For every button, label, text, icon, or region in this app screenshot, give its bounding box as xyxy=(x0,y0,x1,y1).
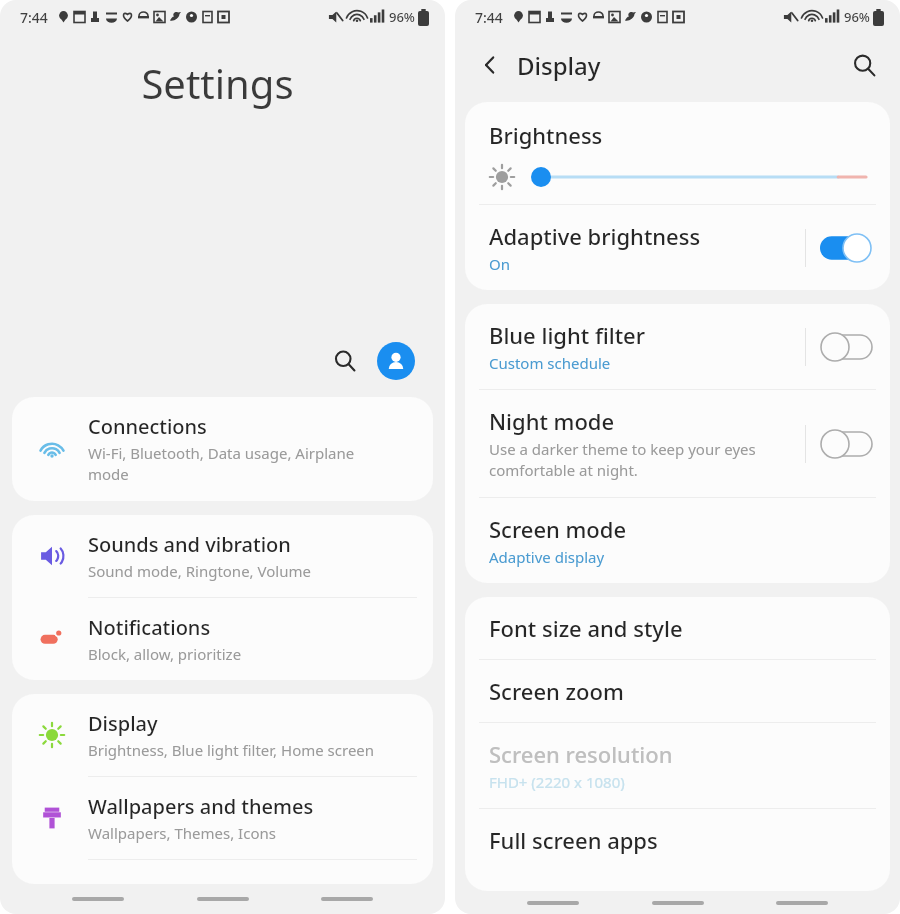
staticText: Use a darker theme to keep your eyes com… xyxy=(489,439,756,481)
button[interactable]: Screen resolution xyxy=(465,723,890,808)
button[interactable]: Wallpapers and themes xyxy=(12,777,433,859)
staticText: Wallpapers and themes xyxy=(88,793,314,820)
staticText: Notifications xyxy=(88,614,211,641)
staticText: Wi-Fi, Bluetooth, Data usage, Airplane m… xyxy=(88,443,355,485)
button[interactable]: Off xyxy=(820,429,872,459)
staticText: Brightness, Blue light filter, Home scre… xyxy=(88,740,375,760)
staticText: Block, allow, prioritize xyxy=(88,644,242,664)
staticText: Blue light filter xyxy=(489,320,646,350)
button[interactable]: Full screen apps xyxy=(465,809,890,871)
button[interactable]: Samsung account xyxy=(377,342,415,380)
staticText: Sounds and vibration xyxy=(88,531,291,558)
button[interactable]: Connections xyxy=(12,397,433,501)
button[interactable]: On xyxy=(820,233,872,263)
button[interactable]: Brightness xyxy=(465,102,890,204)
staticText: Font size and style xyxy=(489,613,683,643)
staticText: Night mode xyxy=(489,406,615,436)
staticText: Screen zoom xyxy=(489,676,624,706)
staticText: Full screen apps xyxy=(489,825,658,855)
button[interactable]: Search settings xyxy=(325,341,365,381)
button[interactable]: Off xyxy=(820,332,872,362)
staticText: Settings xyxy=(0,56,435,110)
staticText: Screen mode xyxy=(489,514,627,544)
button[interactable]: Screen zoom xyxy=(465,660,890,722)
staticText: Screen resolution xyxy=(489,739,673,769)
staticText: Connections xyxy=(88,413,207,440)
button[interactable]: Night mode xyxy=(465,390,890,497)
staticText: 96% xyxy=(389,8,415,26)
button[interactable]: Back xyxy=(473,48,507,82)
staticText: Wallpapers, Themes, Icons xyxy=(88,823,276,843)
staticText: Sound mode, Ringtone, Volume xyxy=(88,561,311,581)
staticText: 96% xyxy=(844,8,870,26)
button[interactable]: Screen mode xyxy=(465,498,890,583)
staticText: Display xyxy=(517,49,601,82)
button[interactable]: Blue light filter xyxy=(465,304,890,389)
staticText: Adaptive brightness xyxy=(489,221,701,251)
button[interactable]: Display xyxy=(12,694,433,776)
button[interactable]: Notifications xyxy=(12,598,433,680)
staticText: Brightness xyxy=(489,120,603,150)
button[interactable]: Sounds and vibration xyxy=(12,515,433,597)
staticText: FHD+ (2220 x 1080) xyxy=(489,772,625,792)
staticText: On xyxy=(489,254,510,274)
staticText: 7:44 xyxy=(475,8,503,27)
staticText: Custom schedule xyxy=(489,353,611,373)
staticText: Display xyxy=(88,710,158,737)
button[interactable]: Adaptive brightness xyxy=(465,205,890,290)
button[interactable]: Search xyxy=(846,47,882,83)
staticText: Adaptive display xyxy=(489,547,605,567)
button[interactable]: Font size and style xyxy=(465,597,890,659)
staticText: 7:44 xyxy=(20,8,48,27)
